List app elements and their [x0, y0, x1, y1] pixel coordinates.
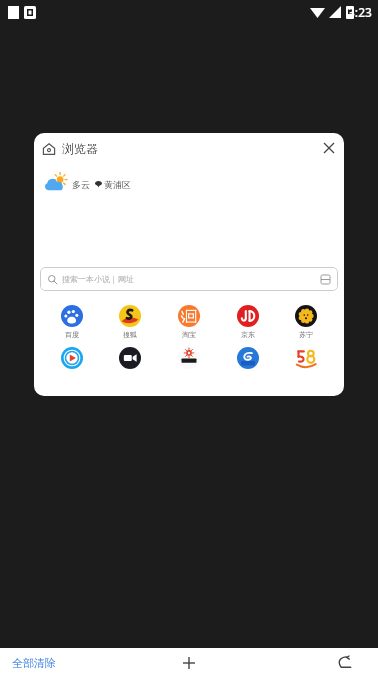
staticText: 多云	[72, 179, 90, 190]
staticText: 搜狐	[123, 330, 137, 339]
staticText: 苏宁	[299, 330, 313, 339]
button[interactable]: App shortcut	[227, 347, 269, 369]
staticText: 黄浦区	[104, 179, 131, 190]
staticText: 浏览器	[62, 141, 98, 156]
button[interactable]: Close	[318, 137, 340, 159]
button[interactable]: Back	[332, 651, 356, 675]
staticText: 京东	[241, 330, 255, 339]
staticText: 搜索一本小说｜网址	[62, 274, 134, 284]
staticText: 淘宝	[182, 330, 196, 339]
staticText: 3:23	[348, 4, 372, 20]
staticText: 百度	[65, 330, 79, 339]
button[interactable]: 搜索一本小说｜网址	[40, 267, 338, 291]
button[interactable]: App shortcut	[285, 347, 327, 369]
button[interactable]: 多云	[44, 171, 131, 197]
button[interactable]: 淘宝	[168, 305, 210, 339]
button[interactable]: 百度	[51, 305, 93, 339]
button[interactable]: App shortcut	[168, 347, 210, 369]
button[interactable]: New tab	[176, 650, 202, 676]
button[interactable]: App shortcut	[109, 347, 151, 369]
other: Scan	[321, 275, 330, 284]
button[interactable]: 苏宁	[285, 305, 327, 339]
button[interactable]: 全部清除	[12, 656, 56, 670]
button[interactable]: 京东	[227, 305, 269, 339]
button[interactable]: App shortcut	[51, 347, 93, 369]
button[interactable]: 浏览器	[42, 141, 98, 156]
button[interactable]: 搜狐	[109, 305, 151, 339]
